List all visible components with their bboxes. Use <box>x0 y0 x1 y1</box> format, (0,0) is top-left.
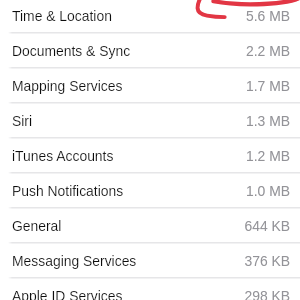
staticText: 5.6 MB <box>245 8 290 24</box>
staticText: 1.2 MB <box>245 148 290 164</box>
staticText: 2.2 MB <box>245 43 290 59</box>
button[interactable]: Mapping Services <box>0 67 300 102</box>
staticText: 1.7 MB <box>245 78 290 94</box>
button[interactable]: Messaging Services <box>0 242 300 277</box>
staticText: Apple ID Services <box>12 288 123 300</box>
button[interactable]: Apple ID Services <box>0 277 300 300</box>
button[interactable]: Time & Location <box>0 0 300 32</box>
staticText: iTunes Accounts <box>12 148 114 164</box>
button[interactable]: Push Notifications <box>0 172 300 207</box>
staticText: Time & Location <box>12 8 112 24</box>
staticText: Documents & Sync <box>12 43 131 59</box>
staticText: 1.3 MB <box>245 113 290 129</box>
staticText: 644 KB <box>244 218 290 234</box>
other: Highlighted annotation <box>0 0 300 300</box>
staticText: 376 KB <box>244 253 290 269</box>
button[interactable]: iTunes Accounts <box>0 137 300 172</box>
staticText: 298 KB <box>244 288 290 300</box>
button[interactable]: Siri <box>0 102 300 137</box>
staticText: Push Notifications <box>12 183 124 199</box>
button[interactable]: Documents & Sync <box>0 32 300 67</box>
staticText: Messaging Services <box>12 253 137 269</box>
staticText: 1.0 MB <box>245 183 290 199</box>
staticText: Siri <box>12 113 33 129</box>
staticText: Mapping Services <box>12 78 123 94</box>
staticText: General <box>12 218 62 234</box>
button[interactable]: General <box>0 207 300 242</box>
